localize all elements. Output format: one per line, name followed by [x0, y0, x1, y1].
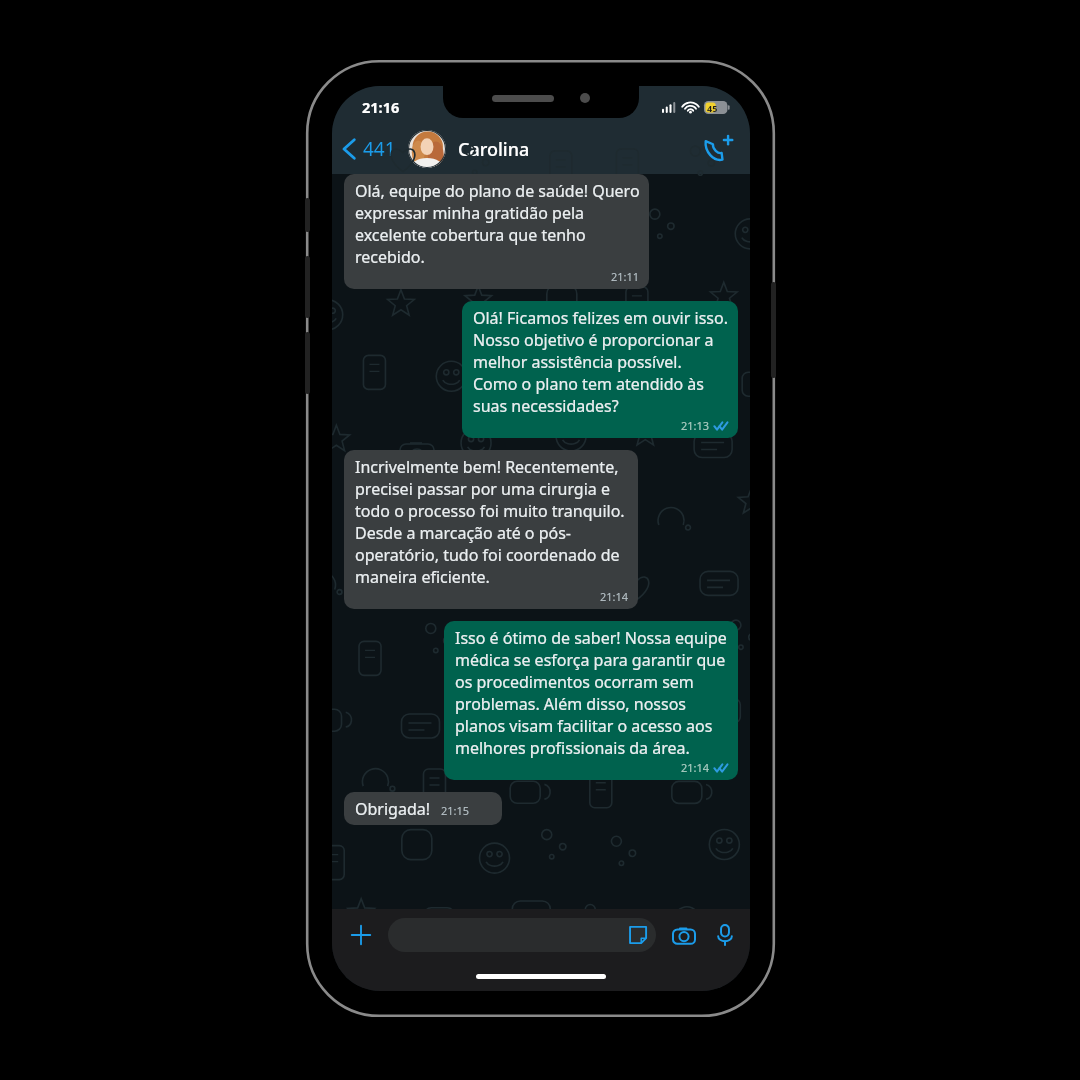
staticText: 21:14: [600, 589, 629, 604]
staticText: 21:15: [441, 803, 470, 818]
staticText: Olá! Ficamos felizes em ouvir isso. Noss…: [473, 307, 729, 417]
button[interactable]: Voice message: [712, 920, 738, 950]
button[interactable]: Obrigada!: [344, 792, 502, 825]
button[interactable]: Stickers: [388, 918, 656, 952]
staticText: 21:14: [681, 760, 710, 775]
button[interactable]: Voice call: [688, 127, 750, 171]
staticText: Olá, equipe do plano de saúde! Quero exp…: [355, 180, 640, 268]
button[interactable]: Carolina: [408, 130, 688, 168]
staticText: 441: [363, 136, 396, 162]
staticText: Isso é ótimo de saber! Nossa equipe médi…: [455, 627, 729, 759]
button[interactable]: Olá! Ficamos felizes em ouvir isso. Noss…: [462, 301, 738, 438]
button[interactable]: Stickers: [628, 925, 656, 945]
staticText: Incrivelmente bem! Recentemente, precise…: [355, 456, 629, 588]
button[interactable]: Isso é ótimo de saber! Nossa equipe médi…: [444, 621, 738, 780]
staticText: 21:11: [611, 269, 640, 284]
button[interactable]: Camera: [668, 921, 700, 949]
button[interactable]: Incrivelmente bem! Recentemente, precise…: [344, 450, 638, 609]
button[interactable]: Attach: [344, 918, 378, 952]
staticText: 21:16: [362, 97, 400, 117]
staticText: 45: [707, 102, 718, 114]
staticText: Obrigada!: [355, 798, 431, 820]
staticText: Carolina: [458, 137, 530, 162]
button[interactable]: Olá, equipe do plano de saúde! Quero exp…: [344, 174, 649, 289]
button[interactable]: 441: [332, 130, 400, 168]
staticText: 21:13: [681, 418, 710, 433]
